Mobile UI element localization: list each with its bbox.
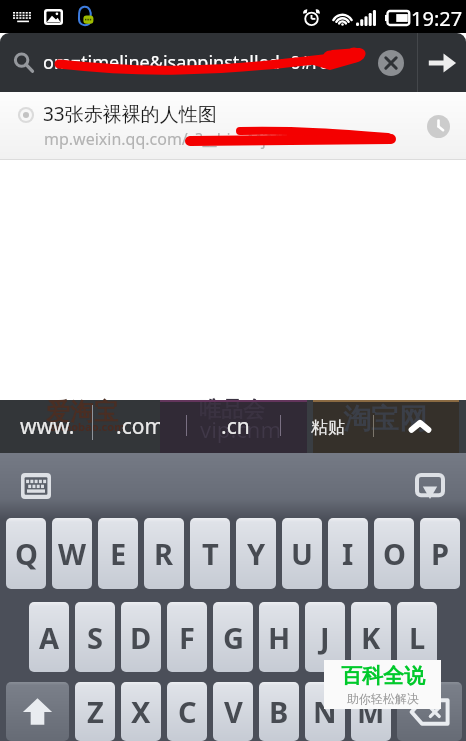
staticText: G	[223, 618, 244, 657]
other: Collapse	[410, 419, 430, 434]
staticText: www.	[20, 412, 75, 441]
staticText: 百科全说	[341, 663, 425, 689]
staticText: W	[58, 534, 87, 573]
staticText: I	[342, 534, 354, 573]
staticText: L	[409, 618, 426, 657]
button[interactable]: om=timeline&isappinstalled=0#rd	[0, 33, 365, 92]
staticText: D	[130, 618, 152, 657]
staticText: Q	[15, 534, 38, 573]
button[interactable]: Clear	[365, 33, 417, 92]
staticText: 爱淘宝	[46, 397, 118, 427]
staticText: 淘宝网	[343, 401, 427, 436]
button[interactable]: L	[397, 602, 437, 672]
button[interactable]: H	[259, 602, 299, 672]
staticText: C	[178, 692, 197, 731]
button[interactable]: C	[167, 682, 207, 741]
button[interactable]: M	[351, 682, 391, 741]
staticText: F	[179, 618, 195, 657]
staticText: U	[291, 534, 313, 573]
button[interactable]: E	[98, 518, 138, 589]
button[interactable]: W	[52, 518, 92, 589]
button[interactable]: 淘宝网	[313, 400, 459, 453]
button[interactable]: J	[305, 602, 345, 672]
staticText: 唯品会	[199, 396, 265, 424]
button[interactable]: Hide keyboard	[412, 470, 448, 502]
staticText: 助你轻松解决	[347, 691, 419, 706]
staticText: T	[202, 534, 219, 573]
button[interactable]: P	[420, 518, 460, 589]
button[interactable]: N	[305, 682, 345, 741]
staticText: 33张赤裸裸的人性图	[43, 101, 217, 127]
button[interactable]: O	[374, 518, 414, 589]
button[interactable]: 唯品会	[160, 400, 307, 453]
button[interactable]: A	[29, 602, 69, 672]
button[interactable]: D	[121, 602, 161, 672]
staticText: B	[269, 692, 289, 731]
staticText: aitaobao.com	[50, 419, 125, 434]
button[interactable]: Backspace	[397, 682, 462, 741]
button[interactable]: Switch keyboard	[18, 470, 54, 502]
staticText: 粘贴	[311, 417, 345, 438]
staticText: S	[87, 618, 103, 657]
button[interactable]: Q	[6, 518, 46, 589]
button[interactable]: K	[351, 602, 391, 672]
button[interactable]: Shift	[6, 682, 69, 741]
staticText: E	[110, 534, 127, 573]
staticText: mp.weixin.qq.com/s?__biz=MjM5	[44, 128, 290, 150]
button[interactable]: Y	[236, 518, 276, 589]
staticText: Y	[247, 534, 266, 573]
button[interactable]: V	[213, 682, 253, 741]
staticText: Z	[87, 692, 104, 731]
button[interactable]: F	[167, 602, 207, 672]
staticText: R	[154, 534, 174, 573]
staticText: .cn	[221, 412, 250, 441]
staticText: X	[131, 692, 151, 731]
button[interactable]: 33张赤裸裸的人性图	[0, 92, 466, 160]
button[interactable]: G	[213, 602, 253, 672]
button[interactable]: I	[328, 518, 368, 589]
staticText: M	[357, 692, 385, 731]
staticText: H	[268, 618, 291, 657]
staticText: vip.cnm	[200, 414, 282, 444]
button[interactable]: 爱淘宝	[0, 400, 160, 453]
button[interactable]: T	[190, 518, 230, 589]
staticText: 19:27	[411, 5, 463, 32]
button[interactable]: X	[121, 682, 161, 741]
staticText: N	[313, 692, 337, 731]
button[interactable]: U	[282, 518, 322, 589]
button[interactable]: R	[144, 518, 184, 589]
staticText: K	[361, 618, 381, 657]
button[interactable]: Go	[418, 33, 466, 92]
staticText: J	[320, 618, 330, 657]
staticText: O	[383, 534, 406, 573]
staticText: V	[224, 692, 243, 731]
staticText: om=timeline&isappinstalled=0#rd	[43, 50, 331, 75]
staticText: P	[431, 534, 450, 573]
staticText: .com	[116, 412, 165, 441]
staticText: A	[39, 618, 60, 657]
button[interactable]: B	[259, 682, 299, 741]
button[interactable]: S	[75, 602, 115, 672]
button[interactable]: Z	[75, 682, 115, 741]
